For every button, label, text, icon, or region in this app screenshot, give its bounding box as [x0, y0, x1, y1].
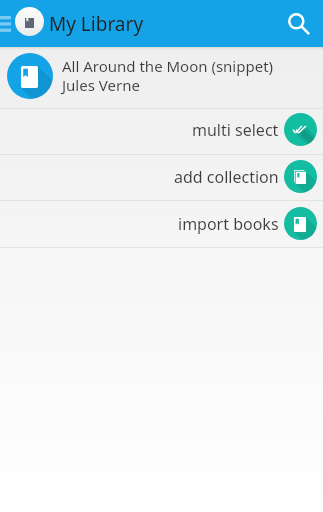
- staticText: add collection: [174, 166, 279, 188]
- button[interactable]: add collection: [0, 155, 323, 201]
- button[interactable]: My Library: [15, 7, 44, 36]
- staticText: import books: [178, 213, 279, 235]
- button[interactable]: All Around the Moon (snippet): [0, 47, 323, 109]
- button[interactable]: import books: [0, 201, 323, 248]
- staticText: Jules Verne: [62, 75, 140, 95]
- staticText: My Library: [49, 11, 144, 37]
- button[interactable]: multi select: [0, 109, 323, 155]
- button[interactable]: Search: [282, 4, 318, 40]
- staticText: multi select: [192, 119, 279, 141]
- staticText: All Around the Moon (snippet): [62, 56, 274, 76]
- button[interactable]: Open navigation menu: [0, 16, 11, 33]
